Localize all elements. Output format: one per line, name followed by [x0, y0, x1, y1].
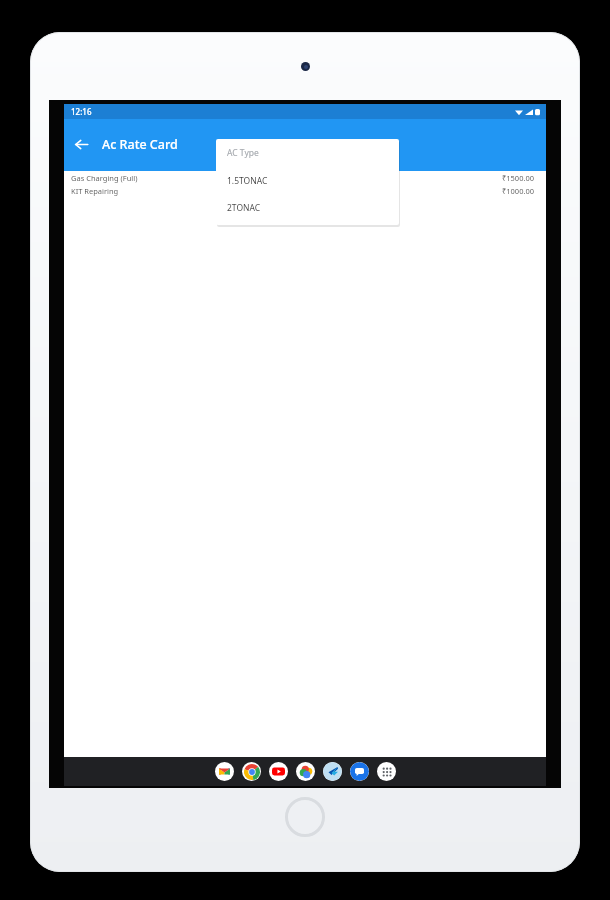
button[interactable]: 2TONAC [216, 194, 399, 221]
button[interactable]: Gas Charging (Full) [64, 171, 546, 184]
button[interactable]: YouTube [269, 762, 288, 781]
staticText: 2TONAC [227, 202, 261, 214]
staticText: 12:16 [71, 106, 92, 117]
staticText: AC Type [227, 147, 259, 159]
button[interactable]: Gmail [215, 762, 234, 781]
staticText: 1.5TONAC [227, 175, 268, 187]
button[interactable]: All apps [377, 762, 396, 781]
staticText: Ac Rate Card [102, 136, 178, 153]
staticText: Gas Charging (Full) [71, 173, 138, 183]
staticText: ₹1500.00 [502, 173, 535, 183]
button[interactable]: Messages [350, 762, 369, 781]
button[interactable]: Back [64, 127, 98, 161]
button[interactable]: AC Type [216, 139, 399, 167]
button[interactable]: Chrome [242, 762, 261, 781]
staticText: KIT Repairing [71, 186, 119, 196]
button[interactable]: KIT Repairing [64, 184, 546, 197]
button[interactable]: Photos [296, 762, 315, 781]
button[interactable]: 1.5TONAC [216, 167, 399, 194]
staticText: ₹1000.00 [502, 186, 535, 196]
button[interactable]: Flutter [323, 762, 342, 781]
